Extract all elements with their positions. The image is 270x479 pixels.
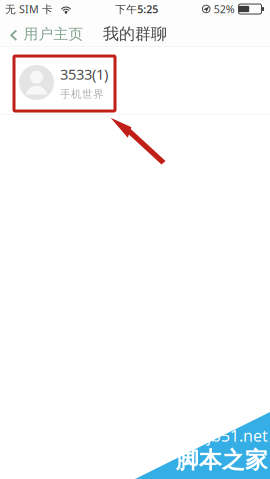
staticText: 用户主页 [24, 25, 84, 43]
staticText: 无 SIM 卡 [5, 2, 53, 16]
staticText: 52% [214, 2, 235, 16]
staticText: 手机世界 [60, 88, 104, 101]
staticText: jb51.net [207, 425, 268, 446]
staticText: 下午5:25 [115, 2, 158, 16]
button[interactable]: 用户主页 [0, 16, 84, 49]
staticText: 3533(1) [60, 64, 108, 84]
staticText: 脚本之家 [176, 446, 268, 474]
staticText: 我的群聊 [103, 24, 167, 44]
button[interactable]: 3533(1) [0, 47, 270, 114]
